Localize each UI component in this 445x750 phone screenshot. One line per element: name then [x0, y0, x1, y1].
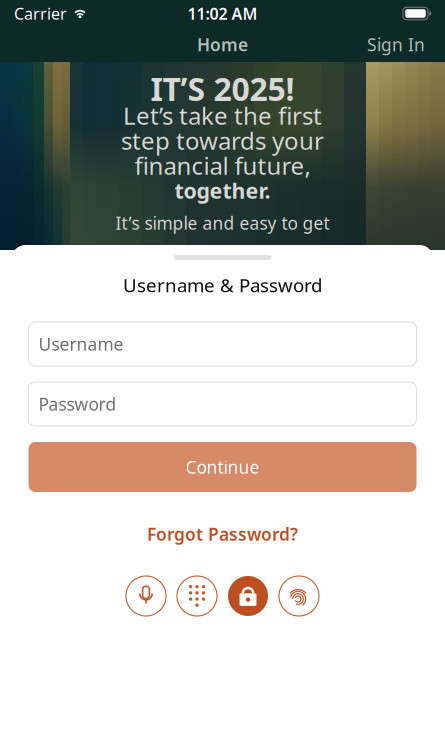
button[interactable]: Secure login [228, 576, 268, 616]
button[interactable]: Touch ID [279, 576, 319, 616]
staticText: Home [197, 33, 248, 56]
button[interactable]: Continue [28, 442, 416, 492]
button[interactable]: Sign In [347, 24, 445, 65]
staticText: Continue [185, 455, 259, 478]
staticText: Sign In [367, 33, 425, 56]
staticText: Username & Password [123, 273, 322, 297]
staticText: It’s simple and easy to get [115, 211, 329, 234]
button[interactable]: Voice login [126, 576, 166, 616]
staticText: Username [38, 332, 123, 355]
staticText: Let’s take the first [123, 100, 322, 131]
staticText: IT’S 2025! [150, 67, 294, 110]
staticText: step towards your [121, 125, 324, 156]
button[interactable]: Username [28, 322, 416, 366]
staticText: Password [38, 392, 116, 415]
button[interactable]: Password [28, 382, 416, 426]
button[interactable]: Forgot Password? [135, 517, 310, 551]
staticText: together. [174, 176, 270, 205]
button[interactable]: Passcode keypad [177, 576, 217, 616]
staticText: Forgot Password? [147, 522, 298, 545]
staticText: financial future, [134, 150, 310, 181]
staticText: 11:02 AM [187, 3, 257, 24]
staticText: Carrier [14, 3, 67, 24]
